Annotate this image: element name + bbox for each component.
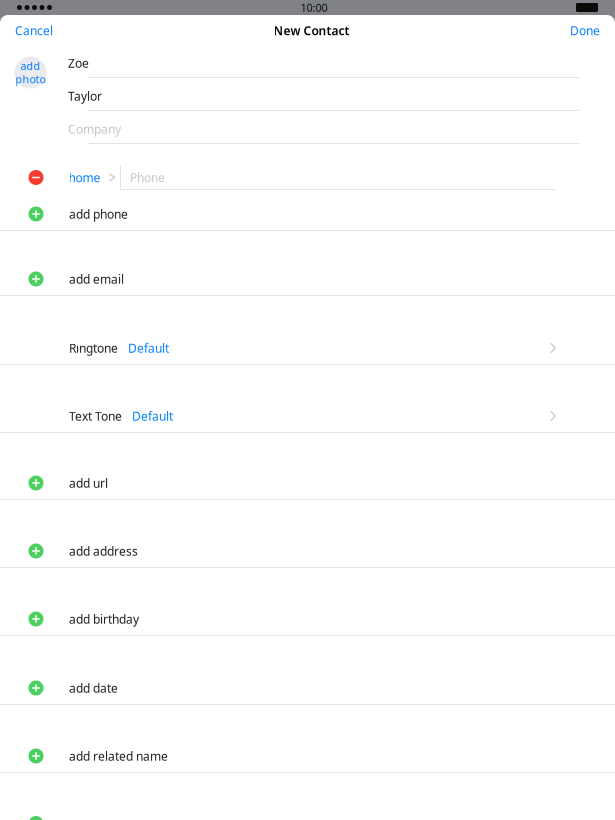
staticText: New Contact xyxy=(273,22,349,38)
staticText: Taylor xyxy=(68,88,102,104)
staticText: Company xyxy=(68,121,121,137)
staticText: add email xyxy=(69,271,124,287)
staticText: Ringtone xyxy=(69,340,118,356)
staticText: add url xyxy=(69,475,108,491)
staticText: Text Tone xyxy=(69,408,122,424)
staticText: 10:00 xyxy=(300,0,327,15)
button[interactable]: Company xyxy=(0,111,615,144)
staticText: home xyxy=(68,169,100,185)
staticText: Done xyxy=(570,22,600,38)
staticText: add phone xyxy=(69,206,128,222)
staticText: Default xyxy=(132,408,173,424)
button[interactable]: add email xyxy=(0,231,615,296)
button[interactable]: add date xyxy=(0,636,615,705)
button[interactable]: add address xyxy=(0,500,615,568)
staticText: add birthday xyxy=(69,611,139,627)
staticText: Default xyxy=(128,340,169,356)
button[interactable]: Taylor xyxy=(0,78,615,111)
staticText: add date xyxy=(69,680,118,696)
button[interactable]: add url xyxy=(0,433,615,500)
button[interactable]: add related name xyxy=(0,705,615,773)
button[interactable]: home xyxy=(68,168,115,186)
button[interactable]: Cancel xyxy=(0,15,63,46)
button[interactable]: Zoe xyxy=(0,46,615,78)
button[interactable]: add phone xyxy=(0,190,615,231)
staticText: Phone xyxy=(130,169,165,185)
button[interactable]: Ringtone xyxy=(0,296,615,365)
button[interactable]: add birthday xyxy=(0,568,615,636)
staticText: photo xyxy=(15,72,45,86)
button[interactable]: Done xyxy=(560,15,615,46)
staticText: add address xyxy=(69,543,138,559)
button[interactable]: Text Tone xyxy=(0,365,615,433)
button[interactable]: Add photo xyxy=(14,56,46,88)
button[interactable] xyxy=(0,773,615,820)
button[interactable]: Remove phone xyxy=(28,170,43,185)
staticText: Zoe xyxy=(68,55,89,71)
staticText: add related name xyxy=(69,748,168,764)
staticText: Cancel xyxy=(15,22,53,38)
staticText: add xyxy=(20,59,40,73)
